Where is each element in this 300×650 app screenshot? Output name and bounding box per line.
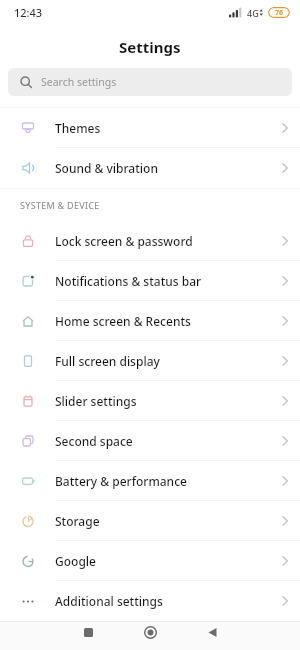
staticText: Sound & vibration bbox=[55, 160, 158, 176]
staticText: Google bbox=[55, 553, 96, 569]
button[interactable]: Slider settings bbox=[0, 381, 300, 421]
staticText: 76 bbox=[275, 8, 284, 18]
staticText: Battery & performance bbox=[55, 473, 187, 489]
button[interactable]: Google bbox=[0, 541, 300, 581]
staticText: Storage bbox=[55, 513, 100, 529]
button[interactable]: Battery & performance bbox=[0, 461, 300, 501]
staticText: Second space bbox=[55, 433, 133, 449]
button[interactable]: Lock screen & password bbox=[0, 221, 300, 261]
staticText: Themes bbox=[55, 120, 101, 136]
staticText: Settings bbox=[119, 37, 181, 57]
button[interactable]: Notifications & status bar bbox=[0, 261, 300, 301]
button[interactable]: Sound & vibration bbox=[0, 148, 300, 188]
button[interactable]: Storage bbox=[0, 501, 300, 541]
staticText: Notifications & status bar bbox=[55, 273, 202, 289]
button[interactable]: Additional settings bbox=[0, 581, 300, 621]
button[interactable]: Themes bbox=[0, 108, 300, 148]
button[interactable] bbox=[197, 621, 227, 644]
staticText: 4G bbox=[247, 7, 259, 19]
staticText: Full screen display bbox=[55, 353, 160, 369]
button[interactable]: Full screen display bbox=[0, 341, 300, 381]
button[interactable] bbox=[73, 621, 103, 644]
button[interactable] bbox=[135, 621, 165, 644]
button[interactable]: Home screen & Recents bbox=[0, 301, 300, 341]
staticText: Slider settings bbox=[55, 393, 137, 409]
staticText: Home screen & Recents bbox=[55, 313, 191, 329]
staticText: 12:43 bbox=[14, 5, 43, 20]
staticText: Lock screen & password bbox=[55, 233, 193, 249]
button[interactable]: Search settings bbox=[8, 68, 292, 96]
staticText: Search settings bbox=[41, 75, 117, 89]
button[interactable]: Second space bbox=[0, 421, 300, 461]
staticText: Additional settings bbox=[55, 593, 163, 609]
staticText: SYSTEM & DEVICE bbox=[20, 199, 100, 211]
